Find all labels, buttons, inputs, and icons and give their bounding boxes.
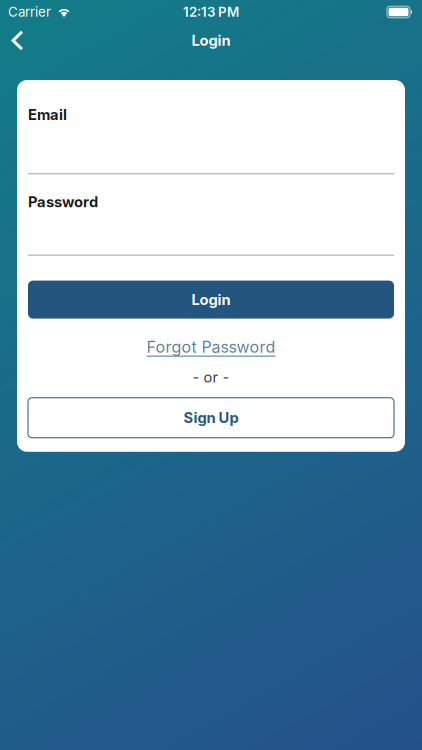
button[interactable]: Back <box>0 23 24 58</box>
staticText: Carrier <box>8 4 51 20</box>
staticText: Email <box>28 106 67 123</box>
staticText: - or - <box>192 368 229 386</box>
staticText: Sign Up <box>183 409 238 426</box>
button[interactable]: Login <box>28 281 394 319</box>
button[interactable]: Forgot Password <box>28 338 394 356</box>
staticText: Forgot Password <box>146 338 275 356</box>
staticText: Login <box>191 291 230 308</box>
staticText: Password <box>28 193 98 211</box>
staticText: Login <box>191 32 230 49</box>
staticText: 12:13 PM <box>183 4 239 20</box>
button[interactable]: Sign Up <box>28 398 394 438</box>
